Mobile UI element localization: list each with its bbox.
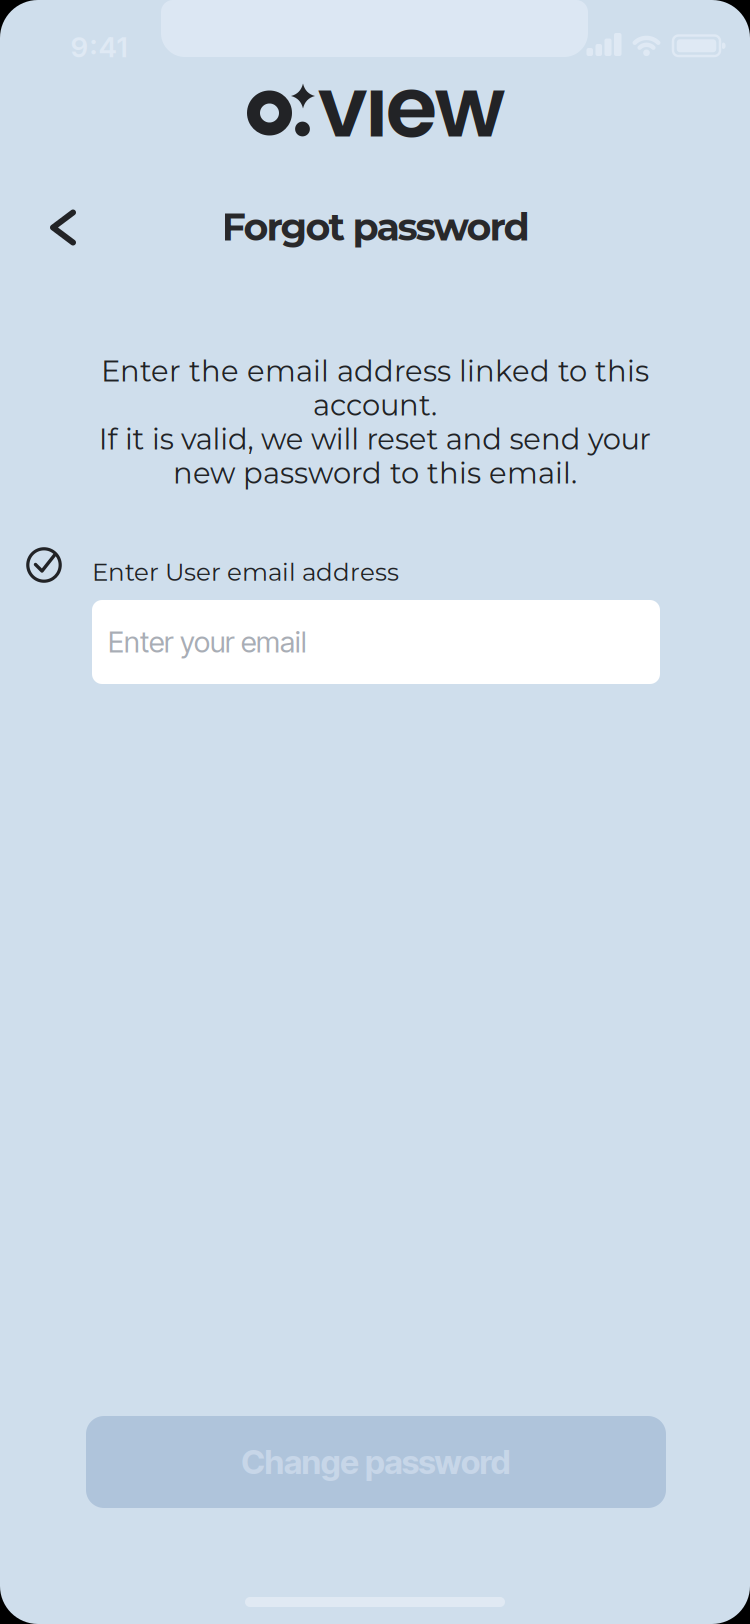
staticText: new password to this email. (173, 455, 577, 491)
staticText: Change password (241, 1442, 511, 1482)
button[interactable] (32, 200, 94, 255)
staticText: If it is valid, we will reset and send y… (99, 421, 651, 457)
staticText: vıew (317, 48, 505, 166)
button[interactable]: Change password (86, 1416, 666, 1508)
button[interactable]: Enter your email (92, 600, 660, 684)
staticText: account. (313, 387, 437, 423)
staticText: 9:41 (70, 30, 127, 64)
staticText: Enter User email address (92, 557, 399, 587)
staticText: Enter the email address linked to this (101, 353, 649, 389)
staticText: Enter your email (108, 624, 307, 660)
staticText: Forgot password (221, 204, 529, 250)
